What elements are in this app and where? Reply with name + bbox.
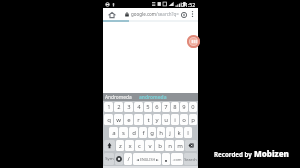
- staticText: z: [119, 142, 122, 150]
- button[interactable]: 4: [134, 102, 143, 112]
- staticText: b: [158, 142, 162, 150]
- button[interactable]: c: [135, 140, 144, 151]
- staticText: u: [164, 116, 168, 124]
- staticText: k: [177, 129, 181, 137]
- staticText: 1: [107, 103, 111, 111]
- button[interactable]: Period: [162, 153, 170, 165]
- button[interactable]: s: [119, 127, 128, 138]
- button[interactable]: r: [134, 114, 143, 125]
- staticText: Andromeda: [105, 94, 132, 101]
- button[interactable]: Shift: [104, 140, 115, 151]
- staticText: m: [177, 142, 183, 150]
- staticText: y: [155, 116, 159, 124]
- button[interactable]: n: [165, 140, 174, 151]
- button[interactable]: q: [104, 114, 113, 125]
- staticText: c: [138, 142, 141, 150]
- button[interactable]: j: [166, 127, 174, 138]
- button[interactable]: h: [157, 127, 165, 138]
- staticText: r: [137, 116, 140, 124]
- button[interactable]: b: [155, 140, 164, 151]
- staticText: l: [187, 129, 189, 137]
- button[interactable]: 2: [114, 102, 123, 112]
- button[interactable]: .com: [171, 153, 183, 165]
- button[interactable]: 6: [153, 102, 161, 112]
- staticText: h: [159, 129, 163, 137]
- button[interactable]: x: [125, 140, 134, 151]
- staticText: 7: [164, 103, 168, 111]
- button[interactable]: 9: [180, 102, 188, 112]
- button[interactable]: 1: [104, 102, 113, 112]
- staticText: v: [148, 142, 152, 150]
- button[interactable]: u: [162, 114, 170, 125]
- button[interactable]: Search: [184, 153, 197, 165]
- button[interactable]: z: [116, 140, 124, 151]
- button[interactable]: andromeda: [139, 94, 167, 101]
- button[interactable]: l: [184, 127, 192, 138]
- button[interactable]: v: [145, 140, 154, 151]
- button[interactable]: g: [148, 127, 156, 138]
- button[interactable]: k: [175, 127, 183, 138]
- button[interactable]: More options: [189, 9, 196, 19]
- button[interactable]: y: [153, 114, 161, 125]
- button[interactable]: t: [144, 114, 152, 125]
- button[interactable]: a: [109, 127, 118, 138]
- button[interactable]: 3: [124, 102, 133, 112]
- button[interactable]: d: [129, 127, 138, 138]
- button[interactable]: i: [171, 114, 179, 125]
- staticText: w: [116, 116, 121, 124]
- staticText: ◄ ENGLISH ►: [136, 157, 159, 162]
- staticText: google.com: [131, 11, 156, 17]
- button[interactable]: 0: [189, 102, 197, 112]
- staticText: 21:52: [182, 1, 196, 8]
- staticText: a: [112, 129, 116, 137]
- staticText: 4: [137, 103, 141, 111]
- staticText: .com: [172, 157, 182, 162]
- button[interactable]: Page info: [179, 10, 188, 19]
- staticText: Sym: [105, 156, 114, 162]
- staticText: t: [147, 116, 150, 124]
- staticText: 8: [173, 103, 177, 111]
- button[interactable]: Keyboard settings: [115, 153, 123, 165]
- button[interactable]: p: [189, 114, 197, 125]
- button[interactable]: 7: [162, 102, 170, 112]
- staticText: 3: [127, 103, 131, 111]
- staticText: 5: [146, 103, 150, 111]
- staticText: 2: [117, 103, 121, 111]
- staticText: x: [128, 142, 132, 150]
- button[interactable]: m: [175, 140, 184, 151]
- staticText: n: [168, 142, 172, 150]
- staticText: o: [182, 116, 186, 124]
- button[interactable]: Backspace: [185, 140, 197, 151]
- button[interactable]: f: [139, 127, 147, 138]
- staticText: p: [191, 116, 195, 124]
- staticText: e: [127, 116, 131, 124]
- button[interactable]: Home: [107, 10, 116, 19]
- button[interactable]: Sym: [104, 153, 114, 165]
- staticText: g: [150, 129, 154, 137]
- staticText: /: [127, 155, 130, 163]
- staticText: Recorded by: [214, 150, 252, 158]
- button[interactable]: Andromeda: [105, 94, 132, 101]
- button[interactable]: ◄ ENGLISH ►: [133, 153, 161, 165]
- staticText: f: [142, 129, 145, 137]
- button[interactable]: e: [124, 114, 133, 125]
- button[interactable]: w: [114, 114, 123, 125]
- staticText: Mobizen: [254, 148, 289, 159]
- staticText: andromeda: [139, 94, 167, 101]
- staticText: 0: [191, 103, 195, 111]
- staticText: Search: [184, 157, 197, 162]
- staticText: 6: [155, 103, 159, 111]
- button[interactable]: /: [124, 153, 132, 165]
- staticText: j: [169, 129, 171, 137]
- button[interactable]: Site badge: [187, 35, 200, 48]
- staticText: 9: [182, 103, 186, 111]
- button[interactable]: o: [180, 114, 188, 125]
- staticText: q: [107, 116, 111, 124]
- staticText: i: [174, 116, 176, 124]
- staticText: /search?q=: [156, 11, 179, 17]
- button[interactable]: 5: [144, 102, 152, 112]
- staticText: d: [132, 129, 136, 137]
- button[interactable]: 8: [171, 102, 179, 112]
- staticText: s: [122, 129, 125, 137]
